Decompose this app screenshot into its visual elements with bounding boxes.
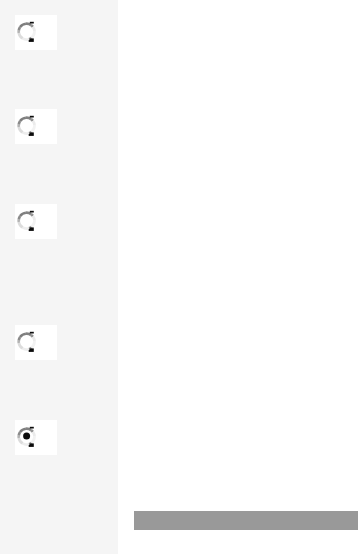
button[interactable]: Option 3 [15, 204, 57, 239]
button[interactable]: Option 2 [15, 109, 57, 144]
button[interactable]: Option 5 [15, 420, 57, 455]
button[interactable]: Option 4 [15, 325, 57, 360]
button[interactable]: Option 1 [15, 15, 57, 50]
